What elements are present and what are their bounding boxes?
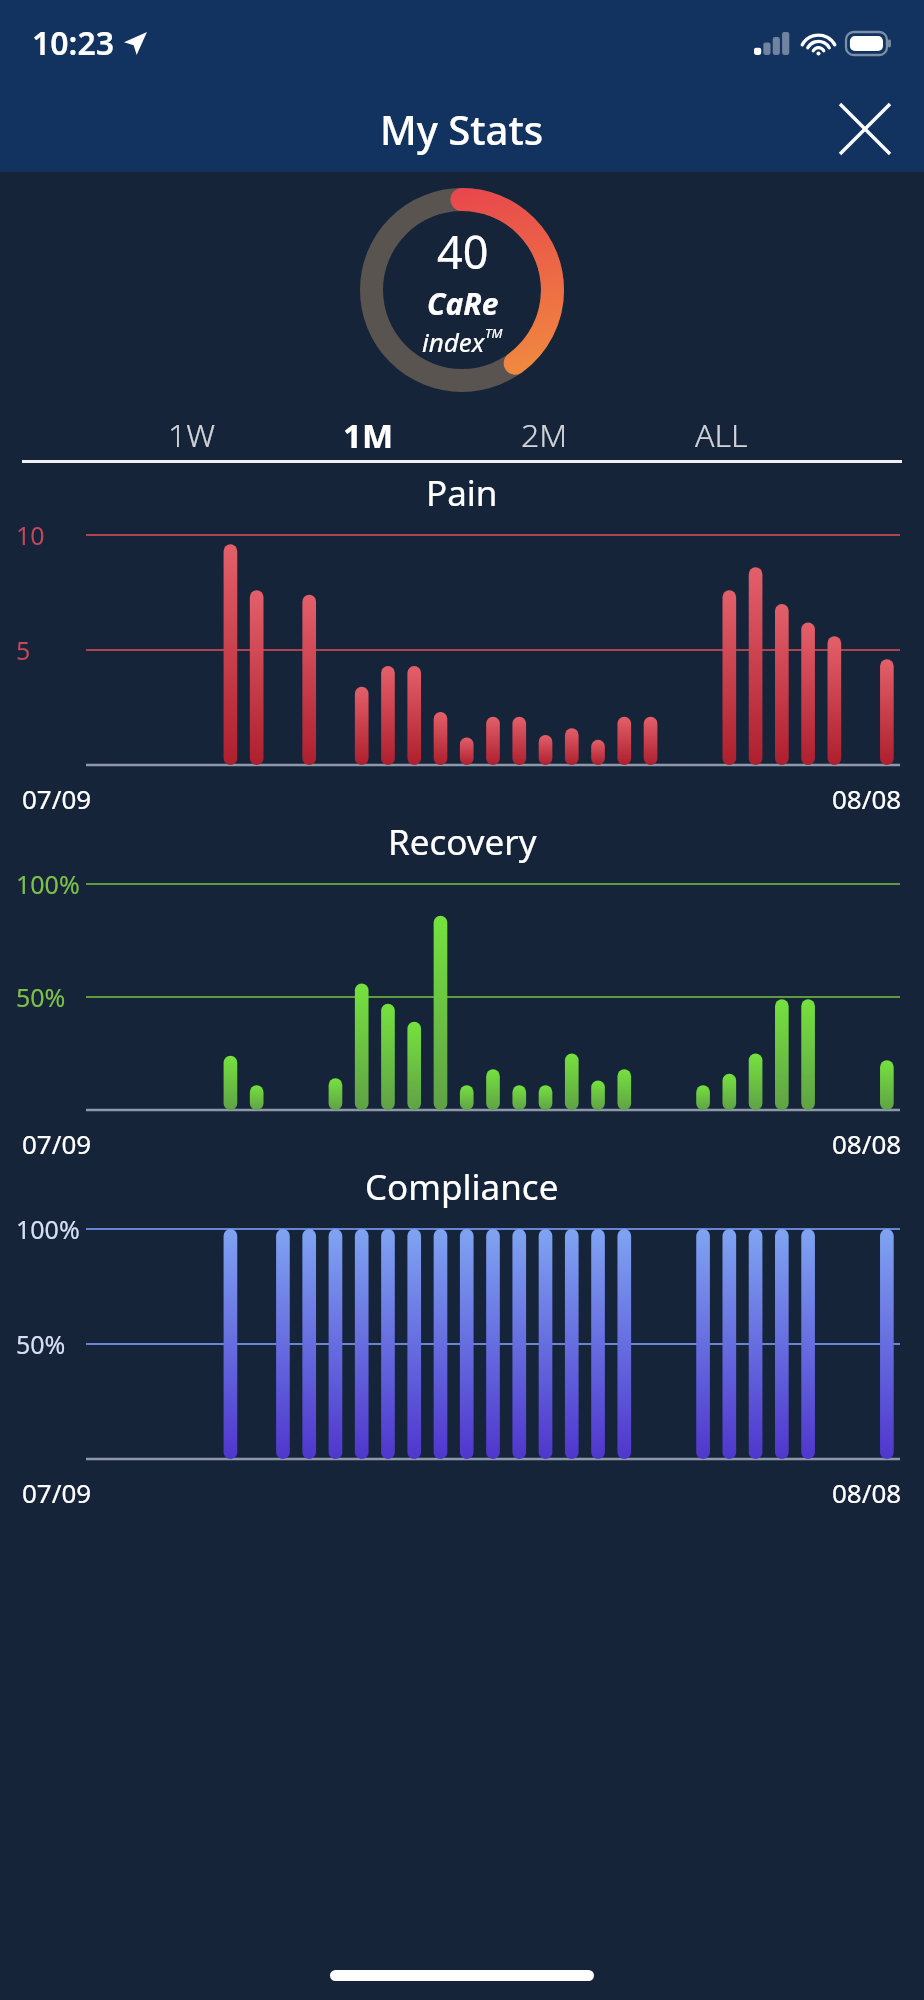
staticText: TM [485, 324, 503, 342]
staticText: 10 [16, 518, 45, 552]
staticText: ALL [695, 413, 748, 455]
staticText: 50% [16, 980, 66, 1014]
staticText: 1W [168, 413, 216, 455]
staticText: 08/08 [832, 1126, 902, 1161]
staticText: Compliance [365, 1163, 559, 1211]
staticText: 5 [16, 633, 31, 667]
staticText: 07/09 [22, 1475, 92, 1510]
staticText: 07/09 [22, 1126, 92, 1161]
staticText: 100% [16, 1212, 80, 1246]
staticText: Pain [426, 469, 498, 517]
staticText: CaRe [427, 283, 499, 324]
staticText: 08/08 [832, 1475, 902, 1510]
staticText: 07/09 [22, 781, 92, 816]
button[interactable]: ALL [687, 408, 756, 460]
button[interactable]: 1M [335, 408, 401, 460]
staticText: 100% [16, 867, 80, 901]
staticText: 10:23 [32, 21, 115, 65]
staticText: My Stats [380, 102, 544, 156]
button[interactable]: 1W [160, 408, 224, 460]
staticText: 08/08 [832, 781, 902, 816]
staticText: 50% [16, 1327, 66, 1361]
button[interactable]: Close [832, 96, 898, 162]
staticText: 1M [343, 413, 393, 455]
staticText: 40 [437, 221, 489, 282]
staticText: index [422, 324, 485, 359]
staticText: Recovery [388, 818, 537, 866]
button[interactable]: 2M [513, 408, 576, 460]
staticText: 2M [521, 413, 568, 455]
